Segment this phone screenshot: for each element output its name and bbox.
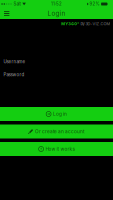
button[interactable]: Menu bbox=[0, 8, 18, 19]
staticText: 92% bbox=[90, 1, 100, 7]
button[interactable]: Or create an account bbox=[0, 124, 113, 138]
staticText: Log in bbox=[53, 111, 67, 117]
staticText: by 3D-VIZ.COM bbox=[80, 21, 110, 26]
button[interactable]: Username bbox=[0, 57, 113, 66]
staticText: Password bbox=[3, 72, 24, 77]
button[interactable]: Log in bbox=[0, 107, 113, 121]
staticText: MY360° bbox=[61, 21, 79, 26]
staticText: Login bbox=[47, 10, 65, 17]
button[interactable]: Password bbox=[0, 70, 113, 79]
staticText: 11:52 bbox=[51, 1, 62, 7]
staticText: How it works bbox=[45, 146, 74, 152]
staticText: Salt bbox=[13, 1, 20, 7]
button[interactable]: How it works bbox=[0, 142, 113, 156]
staticText: Or create an account bbox=[35, 129, 85, 134]
staticText: Username bbox=[3, 59, 25, 64]
